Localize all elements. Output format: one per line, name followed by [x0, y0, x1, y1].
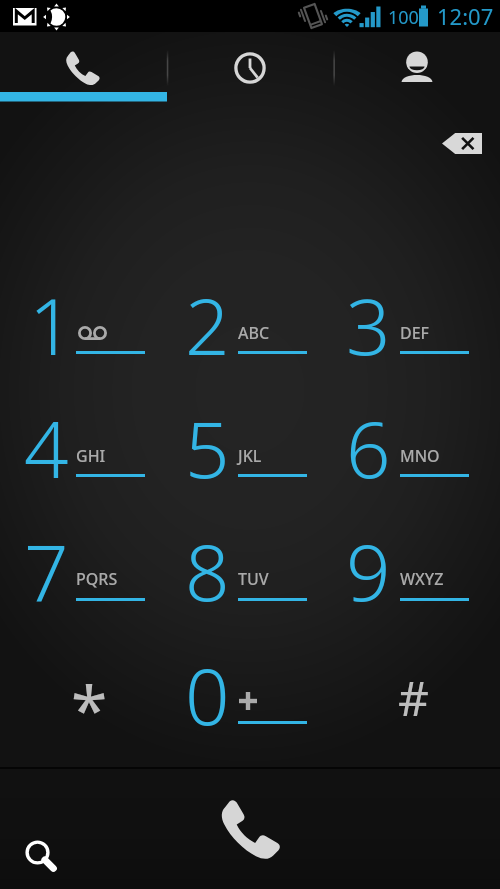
button[interactable]: 2 — [162, 265, 324, 388]
button[interactable]: Call history — [166, 38, 333, 98]
button[interactable]: 1 — [0, 265, 162, 388]
button[interactable]: 4 — [0, 388, 162, 511]
button[interactable]: 6 — [324, 388, 486, 511]
staticText: JKL — [238, 445, 262, 467]
button[interactable]: Keypad — [0, 38, 166, 98]
staticText: 12:07 — [437, 1, 494, 31]
staticText: 6 — [346, 395, 391, 501]
staticText: 100 — [388, 5, 419, 30]
staticText: PQRS — [76, 568, 118, 590]
staticText: GHI — [76, 445, 106, 467]
button[interactable]: 0 — [162, 635, 324, 758]
button[interactable]: 8 — [162, 512, 324, 635]
staticText: 4 — [24, 395, 69, 501]
button[interactable]: Search — [19, 834, 65, 880]
staticText: 5 — [185, 395, 230, 501]
button[interactable]: Call — [205, 789, 297, 869]
staticText: # — [398, 665, 430, 730]
staticText: 2 — [185, 272, 230, 378]
staticText: WXYZ — [400, 568, 444, 590]
button[interactable]: 3 — [324, 265, 486, 388]
staticText: 7 — [24, 518, 69, 624]
button[interactable]: 5 — [162, 388, 324, 511]
staticText: 0 — [185, 642, 230, 748]
staticText: MNO — [400, 445, 440, 467]
staticText: 9 — [346, 518, 391, 624]
button[interactable]: Backspace — [432, 120, 492, 166]
button[interactable]: 9 — [324, 512, 486, 635]
button[interactable]: * — [0, 635, 162, 758]
staticText: 1 — [29, 272, 74, 378]
staticText: 8 — [185, 518, 230, 624]
button[interactable]: 7 — [0, 512, 162, 635]
staticText: TUV — [238, 568, 269, 590]
staticText: 3 — [346, 272, 391, 378]
button[interactable]: # — [324, 635, 486, 758]
staticText: * — [71, 663, 108, 753]
staticText: ABC — [238, 322, 270, 344]
button[interactable]: Contacts — [333, 38, 500, 98]
staticText: DEF — [400, 322, 430, 344]
